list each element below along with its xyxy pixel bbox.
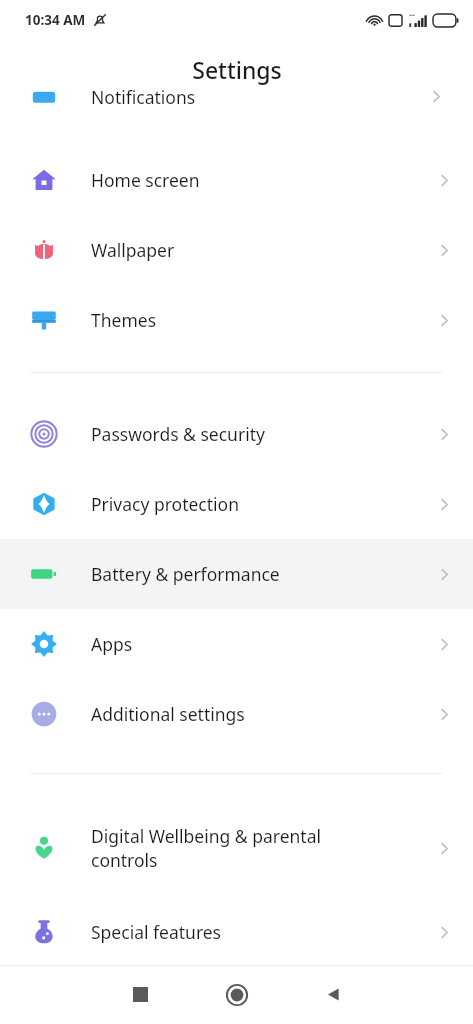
staticText: Additional settings <box>91 702 245 726</box>
staticText: Passwords & security <box>91 422 265 446</box>
button[interactable]: Notifications <box>0 94 473 120</box>
button[interactable]: Digital Wellbeing & parental controls <box>0 802 473 894</box>
button[interactable]: Recents <box>118 965 162 1024</box>
button[interactable]: Home screen <box>0 145 473 215</box>
button[interactable]: Battery & performance <box>0 539 473 609</box>
staticText: Battery & performance <box>91 562 280 586</box>
staticText: Settings <box>192 54 282 85</box>
button[interactable]: Wallpaper <box>0 215 473 285</box>
button[interactable]: Privacy protection <box>0 469 473 539</box>
button[interactable]: Home <box>215 973 259 1017</box>
staticText: Wallpaper <box>91 238 175 262</box>
button[interactable]: Special features <box>0 897 473 967</box>
staticText: Digital Wellbeing & parental controls <box>91 824 322 872</box>
button[interactable]: Passwords & security <box>0 399 473 469</box>
staticText: Privacy protection <box>91 492 239 516</box>
staticText: 10:34 AM <box>25 11 86 29</box>
staticText: Special features <box>91 920 222 944</box>
button[interactable]: Back <box>311 965 355 1024</box>
button[interactable]: Apps <box>0 609 473 679</box>
staticText: Apps <box>91 632 133 656</box>
staticText: Home screen <box>91 168 200 192</box>
button[interactable]: Additional settings <box>0 679 473 749</box>
button[interactable]: Themes <box>0 285 473 355</box>
staticText: Notifications <box>91 85 196 109</box>
staticText: Themes <box>91 308 157 332</box>
